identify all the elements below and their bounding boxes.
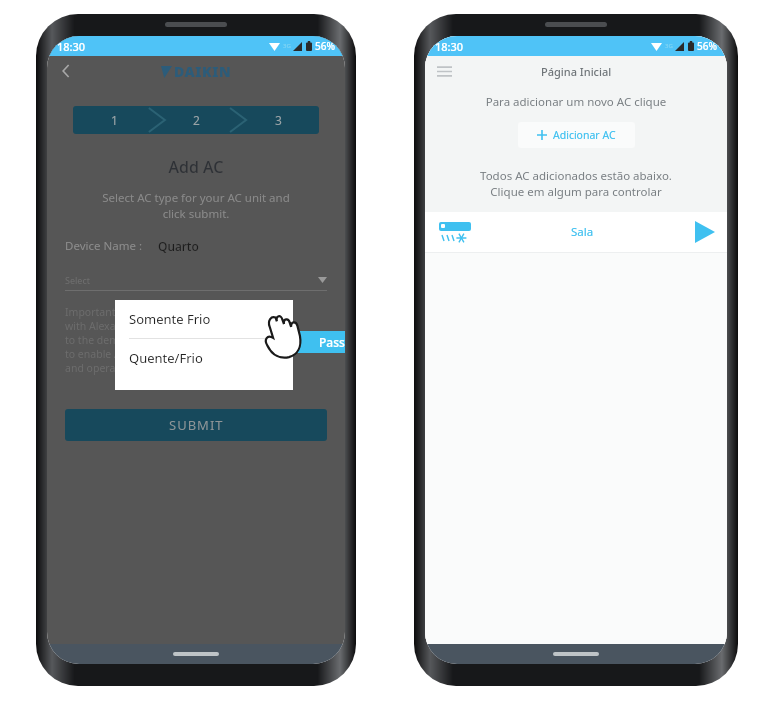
staticText: Adicionar AC — [553, 128, 616, 142]
staticText: 56% — [315, 39, 335, 53]
staticText: Add AC — [47, 156, 345, 178]
staticText: Somente Frio — [129, 310, 211, 328]
staticText: Página Inicial — [541, 64, 612, 79]
staticText: SUBMIT — [169, 416, 224, 434]
staticText: 2 — [193, 112, 200, 128]
button[interactable]: Somente Frio — [115, 300, 293, 338]
staticText: to enable Alexa or Google home services — [65, 347, 266, 361]
staticText: 3G — [665, 42, 673, 50]
staticText: 3G — [283, 42, 291, 50]
staticText: Device Name : — [65, 238, 142, 254]
staticText: Passo 13 — [319, 334, 345, 350]
staticText: 1 — [111, 112, 118, 128]
staticText: Quente/Frio — [129, 349, 203, 367]
staticText: with Alexa and Google. Please refer — [65, 319, 240, 333]
button[interactable]: SUBMIT — [65, 409, 327, 441]
staticText: 3 — [275, 112, 282, 128]
staticText: Select — [65, 274, 90, 286]
staticText: Select AC type for your AC unit and — [47, 190, 345, 206]
staticText: Important - Daikin PH AC works — [65, 305, 221, 319]
button[interactable]: Back — [53, 58, 79, 84]
button[interactable]: Quente/Frio — [115, 339, 293, 377]
staticText: to the demo video for instructions on ho… — [65, 333, 273, 347]
staticText: DAIKIN — [174, 62, 232, 81]
button[interactable]: Menu — [433, 60, 455, 82]
staticText: 18:30 — [57, 39, 86, 54]
staticText: Clique em algum para controlar — [425, 184, 727, 200]
staticText: 18:30 — [435, 39, 464, 54]
staticText: Todos AC adicionados estão abaixo. — [425, 168, 727, 184]
staticText: Quarto — [158, 238, 199, 254]
staticText: and operate your AC with voice commands. — [65, 361, 279, 375]
staticText: Sala — [571, 224, 594, 240]
staticText: 56% — [697, 39, 717, 53]
button[interactable]: Adicionar AC — [518, 122, 635, 148]
button[interactable]: Sala — [425, 212, 727, 252]
staticText: Para adicionar um novo AC clique — [425, 94, 727, 110]
staticText: click submit. — [47, 206, 345, 222]
